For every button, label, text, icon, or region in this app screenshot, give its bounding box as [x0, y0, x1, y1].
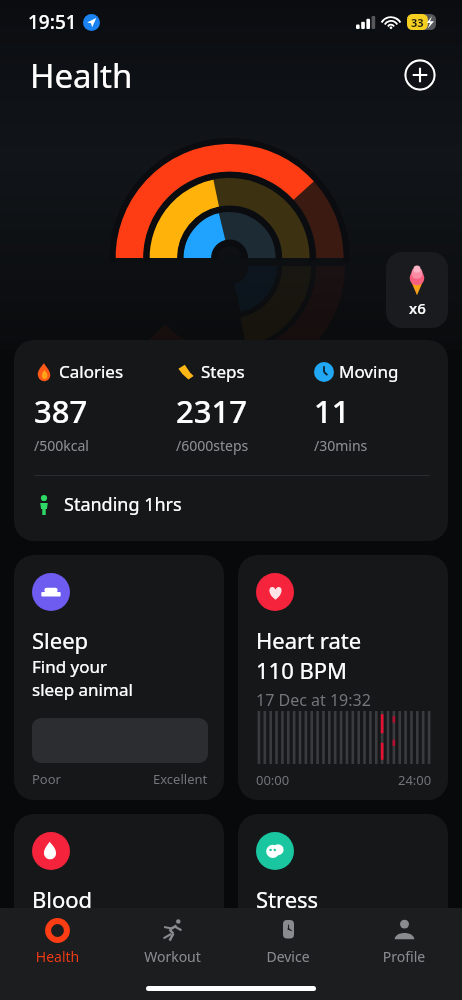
button[interactable]: Heart rate — [238, 555, 448, 800]
staticText: Steps — [201, 360, 245, 383]
staticText: 387 — [34, 390, 88, 432]
staticText: 00:00 — [256, 771, 290, 788]
staticText: /6000steps — [176, 436, 249, 455]
staticText: sleep animal — [32, 678, 133, 701]
staticText: Heart rate — [256, 625, 362, 655]
button[interactable]: Blood — [14, 814, 224, 944]
staticText: Profile — [346, 947, 462, 966]
staticText: x6 — [409, 298, 426, 318]
button[interactable]: Stress — [238, 814, 448, 944]
staticText: Standing 1hrs — [64, 492, 182, 517]
button[interactable]: Device — [230, 916, 346, 966]
staticText: Health — [30, 53, 133, 98]
button[interactable]: Sleep — [14, 555, 224, 800]
button[interactable]: Calories — [14, 340, 448, 541]
staticText: 11 — [314, 390, 350, 432]
staticText: Health — [0, 947, 115, 966]
staticText: 24:00 — [398, 771, 432, 788]
staticText: Blood — [32, 884, 93, 914]
staticText: Calories — [59, 360, 124, 383]
staticText: 17 Dec at 19:32 — [256, 689, 371, 711]
staticText: Device — [230, 947, 346, 966]
staticText: 2317 — [176, 390, 247, 432]
staticText: /500kcal — [34, 436, 89, 455]
staticText: Stress — [256, 884, 319, 914]
staticText: Find your — [32, 655, 108, 678]
button[interactable]: Add — [404, 59, 436, 91]
button[interactable]: Health — [0, 916, 115, 966]
button[interactable]: Treats earned — [386, 252, 448, 328]
staticText: Moving — [339, 360, 399, 383]
button[interactable]: Workout — [115, 916, 230, 966]
staticText: 33 — [411, 15, 424, 30]
staticText: 110 BPM — [256, 655, 348, 685]
staticText: Excellent — [153, 770, 208, 788]
staticText: 19:51 — [28, 9, 77, 35]
staticText: Sleep — [32, 625, 89, 655]
button[interactable]: Profile — [346, 916, 462, 966]
staticText: Workout — [115, 947, 230, 966]
staticText: /30mins — [314, 436, 368, 455]
staticText: Poor — [32, 770, 61, 788]
